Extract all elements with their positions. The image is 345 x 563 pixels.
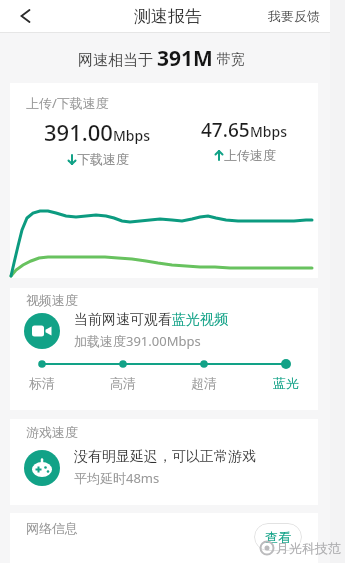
staticText: 391.00 (44, 117, 113, 147)
staticText: 网络信息 (26, 520, 78, 536)
staticText: 测速报告 (134, 6, 202, 27)
staticText: 视频速度 (26, 292, 78, 308)
staticText: 上传速度 (224, 147, 276, 163)
staticText: 网速相当于 (78, 49, 157, 69)
button[interactable] (0, 0, 50, 32)
staticText: 游戏速度 (26, 424, 78, 440)
staticText: 月光科技范 (276, 540, 341, 556)
staticText: 查看 (265, 529, 291, 545)
staticText: 391M (157, 44, 213, 73)
staticText: 当前网速可观看 (74, 311, 172, 329)
staticText: 加载速度391.00Mbps (74, 332, 201, 350)
staticText: 高清 (110, 375, 136, 391)
button[interactable]: 超清 (174, 374, 234, 392)
button[interactable]: 我要反馈 (268, 8, 330, 24)
staticText: Mbps (250, 122, 288, 141)
button[interactable]: 蓝光 (256, 374, 316, 392)
staticText: 标清 (29, 375, 55, 391)
staticText: 平均延时48ms (74, 469, 160, 487)
staticText: 蓝光视频 (172, 311, 228, 329)
staticText: 超清 (191, 375, 217, 391)
staticText: 47.65 (201, 117, 250, 143)
staticText: 上传/下载速度 (26, 94, 109, 112)
button[interactable]: 高清 (93, 374, 153, 392)
staticText: 带宽 (213, 49, 245, 68)
staticText: Mbps (113, 126, 151, 145)
staticText: 蓝光 (273, 375, 299, 391)
button[interactable]: 查看 (254, 523, 302, 551)
button[interactable]: 标清 (12, 374, 72, 392)
staticText: 没有明显延迟，可以正常游戏 (74, 448, 256, 466)
staticText: 我要反馈 (268, 8, 320, 24)
staticText: 下载速度 (77, 151, 129, 167)
